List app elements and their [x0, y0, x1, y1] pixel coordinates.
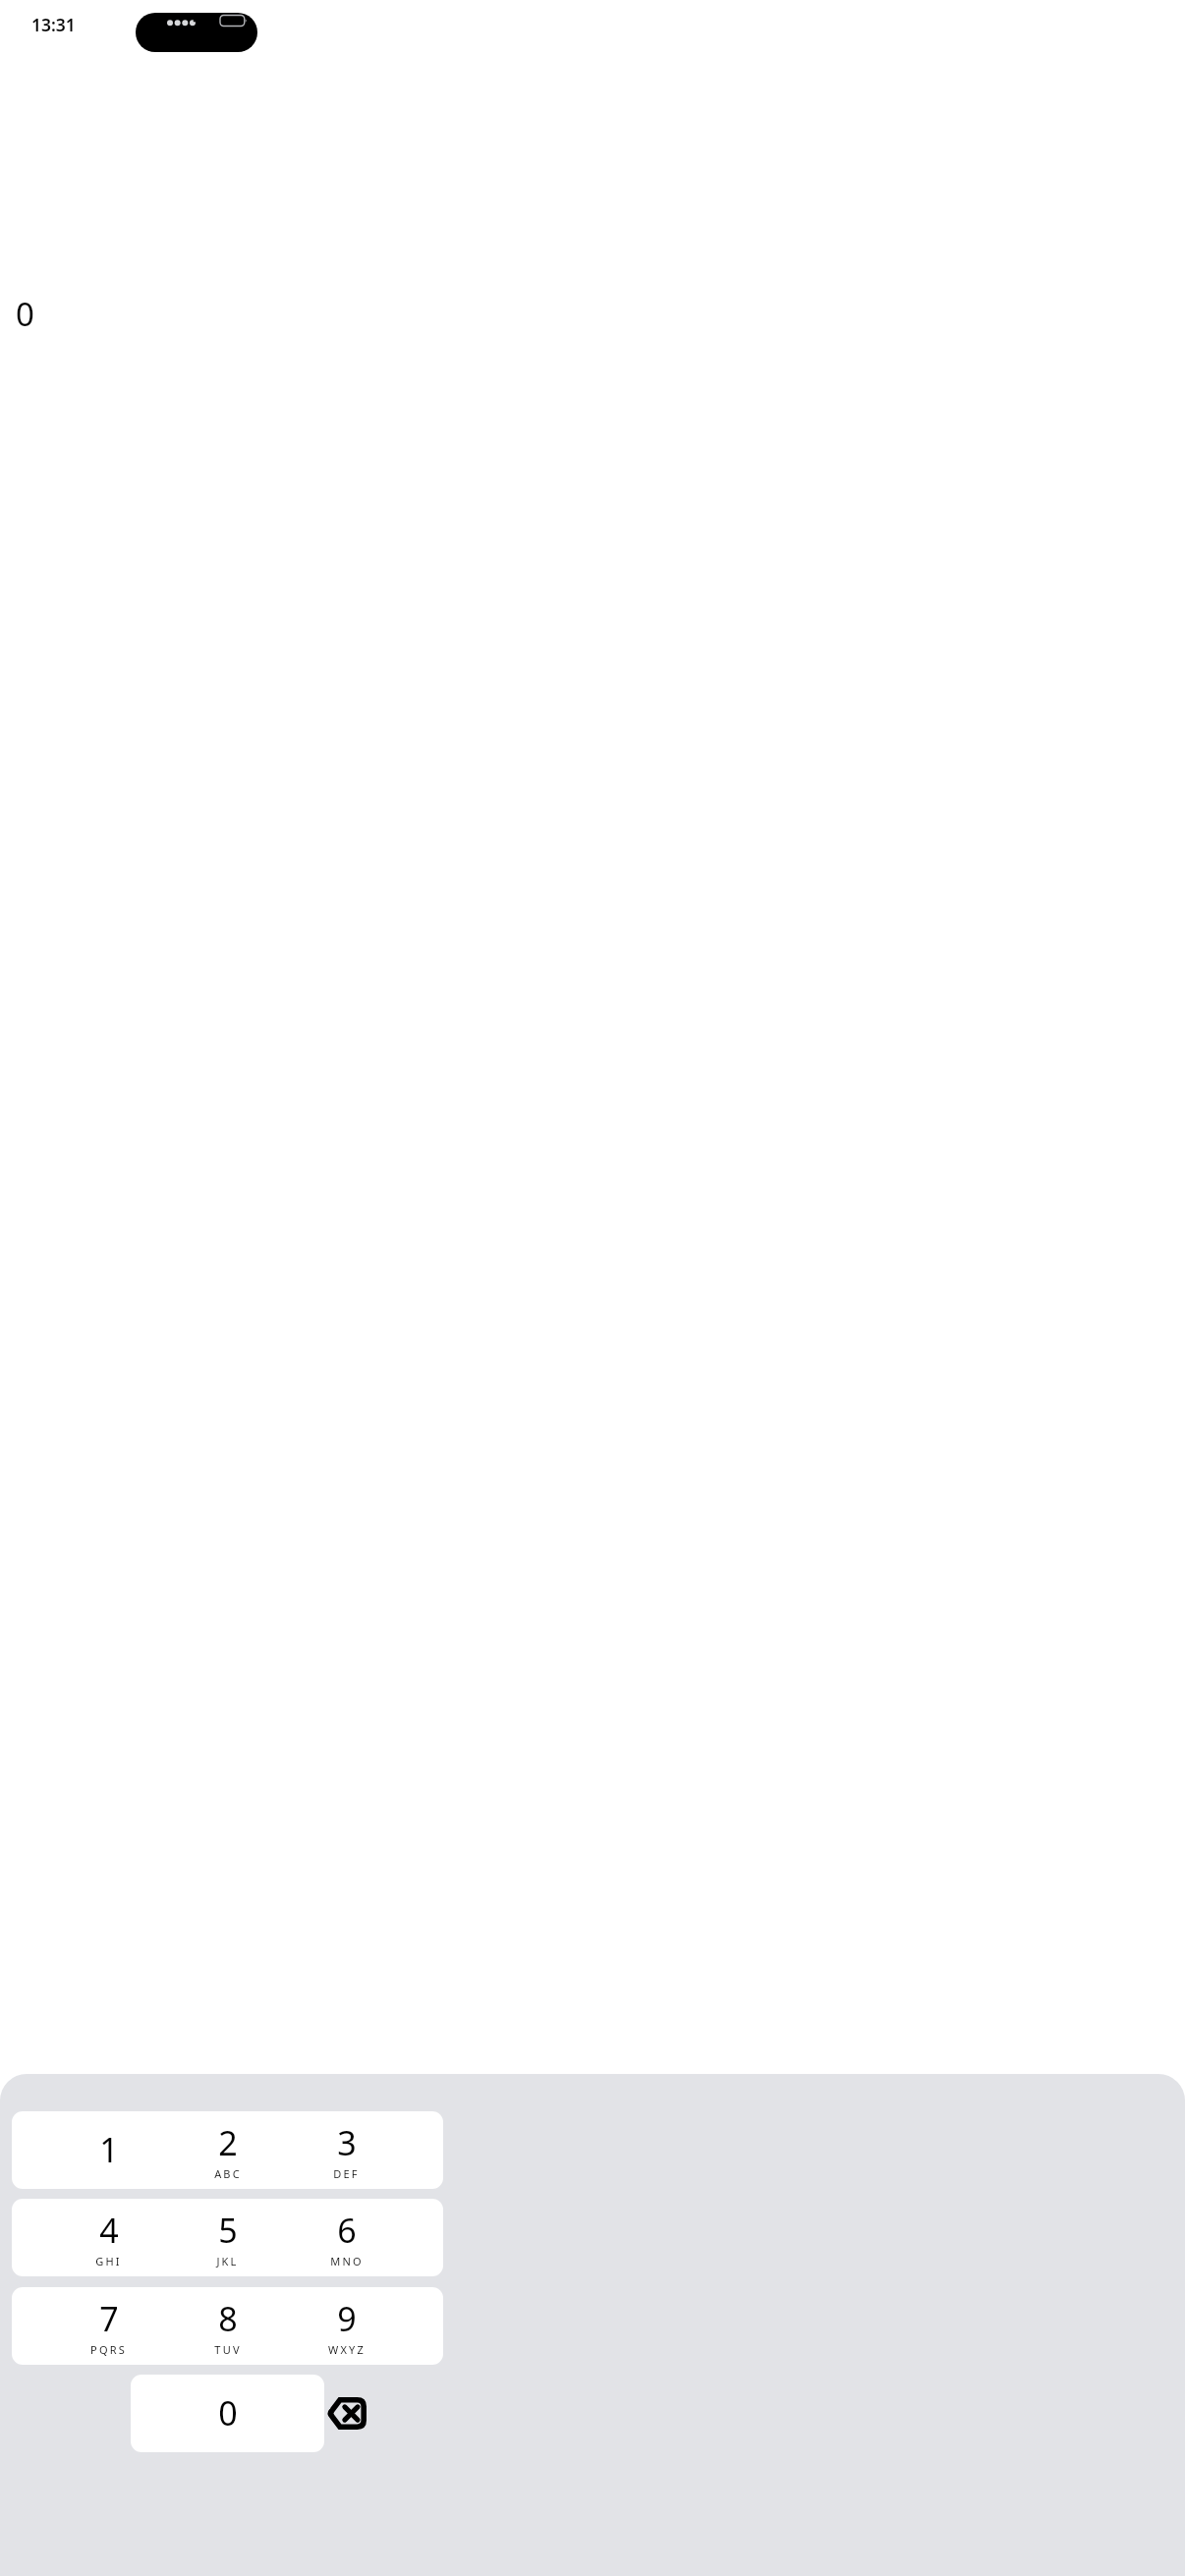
- staticText: 0: [16, 292, 34, 336]
- staticText: 4: [99, 2208, 119, 2253]
- button[interactable]: 2: [131, 2111, 324, 2189]
- staticText: 5: [218, 2208, 238, 2253]
- button[interactable]: Delete: [250, 2375, 443, 2452]
- button[interactable]: 0: [131, 2375, 324, 2452]
- staticText: 9: [337, 2296, 357, 2341]
- staticText: 7: [99, 2296, 119, 2341]
- button[interactable]: 3: [250, 2111, 443, 2189]
- staticText: PQRS: [90, 2342, 127, 2357]
- staticText: 0: [218, 2390, 238, 2436]
- staticText: 8: [218, 2296, 238, 2341]
- staticText: GHI: [95, 2254, 122, 2268]
- staticText: ABC: [214, 2166, 242, 2181]
- staticText: 13:31: [31, 13, 76, 36]
- button[interactable]: 9: [250, 2287, 443, 2365]
- staticText: 3: [337, 2120, 357, 2165]
- staticText: TUV: [214, 2342, 242, 2357]
- button[interactable]: 4: [12, 2199, 205, 2276]
- staticText: WXYZ: [328, 2342, 366, 2357]
- staticText: DEF: [333, 2166, 360, 2181]
- staticText: 2: [218, 2120, 238, 2165]
- staticText: MNO: [330, 2254, 364, 2268]
- button[interactable]: 1: [12, 2111, 205, 2189]
- button[interactable]: 7: [12, 2287, 205, 2365]
- button[interactable]: 5: [131, 2199, 324, 2276]
- staticText: 1: [99, 2127, 119, 2172]
- staticText: JKL: [216, 2254, 239, 2268]
- button[interactable]: 6: [250, 2199, 443, 2276]
- button[interactable]: 8: [131, 2287, 324, 2365]
- staticText: 6: [337, 2208, 357, 2253]
